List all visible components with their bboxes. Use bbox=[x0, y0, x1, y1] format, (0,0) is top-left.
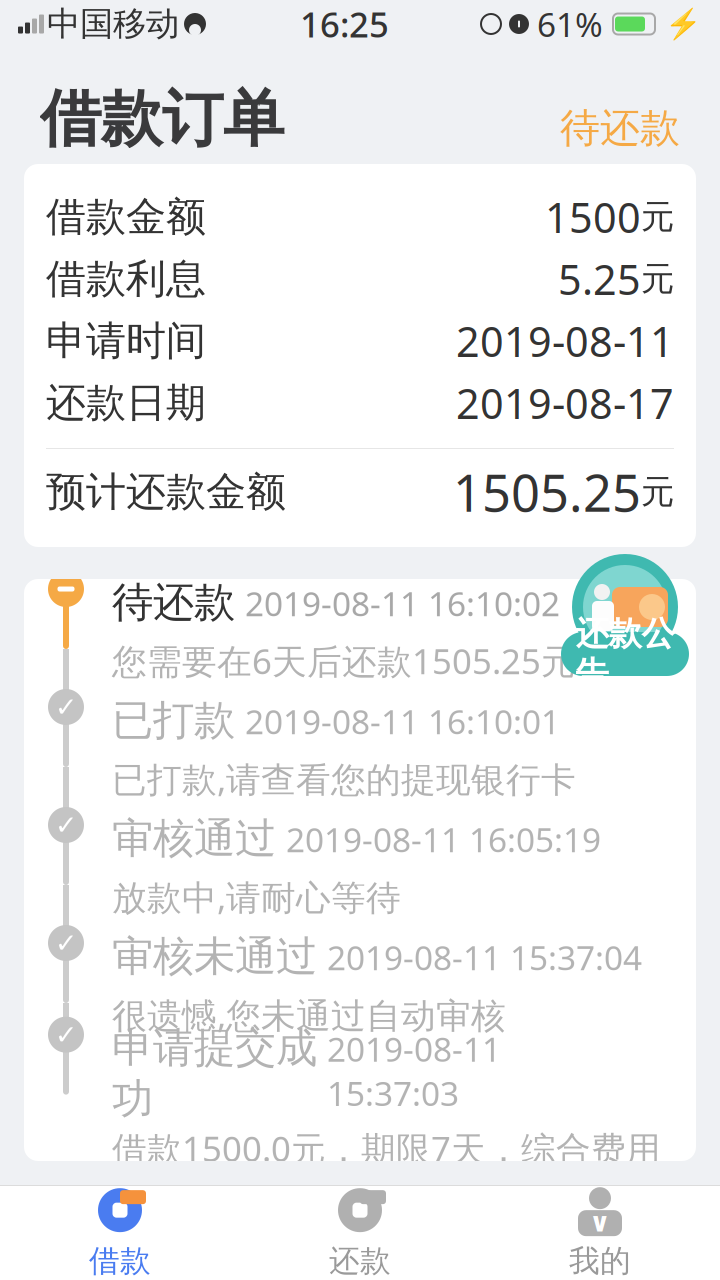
staticText: 借款1500.0元，期限7天，综合费用5.25元，系统审核 bbox=[112, 1125, 661, 1217]
staticText: ∨ bbox=[589, 1207, 611, 1237]
staticText: ✓ bbox=[55, 810, 77, 840]
staticText: ✓ bbox=[55, 1019, 77, 1050]
staticText: 待还款 bbox=[560, 103, 680, 153]
staticText: 元 bbox=[641, 196, 674, 237]
staticText: 2019-08-17 bbox=[456, 376, 674, 430]
staticText: 1505.25 bbox=[453, 458, 641, 526]
staticText: 审核未通过 bbox=[112, 931, 317, 982]
staticText: 还款公告 bbox=[575, 613, 674, 695]
staticText: 2019-08-11 16:10:02 bbox=[245, 581, 560, 625]
staticText: 借款利息 bbox=[46, 254, 206, 303]
staticText: 元 bbox=[641, 258, 674, 299]
staticText: 申请时间 bbox=[46, 316, 206, 365]
button[interactable]: ∨ bbox=[480, 1178, 720, 1280]
staticText: 待还款 bbox=[112, 577, 235, 628]
staticText: 2019-08-11 15:37:04 bbox=[327, 935, 642, 979]
staticText: 预计还款金额 bbox=[46, 467, 286, 516]
staticText: 61% bbox=[537, 2, 603, 46]
staticText: 2019-08-11 bbox=[456, 314, 674, 368]
staticText: ✓ bbox=[55, 928, 77, 958]
staticText: 2019-08-11 16:05:19 bbox=[286, 817, 601, 861]
staticText: ⚡ bbox=[665, 7, 702, 41]
staticText: 还款日期 bbox=[46, 378, 206, 427]
staticText: 2019-08-11 15:37:03 bbox=[327, 1027, 501, 1115]
button[interactable]: 待还款 bbox=[560, 103, 680, 157]
staticText: ✓ bbox=[55, 692, 77, 722]
button[interactable]: 还款 bbox=[240, 1178, 480, 1280]
button[interactable]: 还款公告 bbox=[554, 548, 696, 688]
staticText: 16:25 bbox=[300, 1, 389, 47]
staticText: 中国移动 bbox=[47, 3, 179, 44]
staticText: 您需要在6天后还款1505.25元 bbox=[112, 638, 576, 684]
staticText: 借款订单 bbox=[40, 81, 284, 157]
staticText: 已打款 bbox=[112, 695, 235, 746]
staticText: 我的 bbox=[569, 1242, 631, 1280]
staticText: 已打款,请查看您的提现银行卡 bbox=[112, 756, 576, 802]
staticText: 还款 bbox=[329, 1242, 391, 1280]
staticText: 借款 bbox=[89, 1242, 151, 1280]
staticText: 审核通过 bbox=[112, 813, 276, 864]
staticText: 借款金额 bbox=[46, 192, 206, 241]
button[interactable]: 借款 bbox=[0, 1178, 240, 1280]
staticText: 5.25 bbox=[558, 252, 641, 306]
staticText: 元 bbox=[641, 471, 674, 512]
staticText: 很遗憾,您未通过自动审核 bbox=[112, 992, 506, 1038]
staticText: 放款中,请耐心等待 bbox=[112, 874, 401, 920]
staticText: 2019-08-11 16:10:01 bbox=[245, 699, 560, 743]
staticText: 1500 bbox=[545, 190, 641, 244]
staticText: 申请提交成功 bbox=[112, 1023, 317, 1124]
